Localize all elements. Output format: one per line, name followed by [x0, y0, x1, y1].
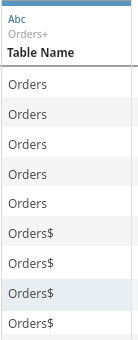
staticText: Orders$ [8, 285, 54, 301]
staticText: Orders [8, 136, 47, 152]
staticText: Orders [8, 76, 47, 92]
staticText: Orders [8, 195, 47, 211]
staticText: Abc [8, 12, 26, 26]
button[interactable]: Orders [2, 127, 131, 157]
button[interactable]: Orders [2, 67, 131, 97]
button[interactable]: Orders$ [2, 246, 131, 276]
staticText: Table Name [7, 45, 75, 61]
button[interactable]: Orders [2, 186, 131, 216]
button[interactable]: Orders [2, 97, 131, 127]
button[interactable]: Orders$ [2, 306, 131, 336]
button[interactable]: Orders [2, 157, 131, 187]
button[interactable]: Orders$ [2, 216, 131, 246]
staticText: Orders+ [8, 27, 49, 41]
staticText: Orders$ [8, 225, 54, 241]
button[interactable]: Abc [2, 6, 131, 65]
staticText: Orders [8, 106, 47, 122]
staticText: Orders$ [8, 255, 54, 271]
button[interactable]: Orders$ [2, 276, 131, 306]
staticText: Orders [8, 166, 47, 182]
staticText: Orders$ [8, 315, 54, 331]
